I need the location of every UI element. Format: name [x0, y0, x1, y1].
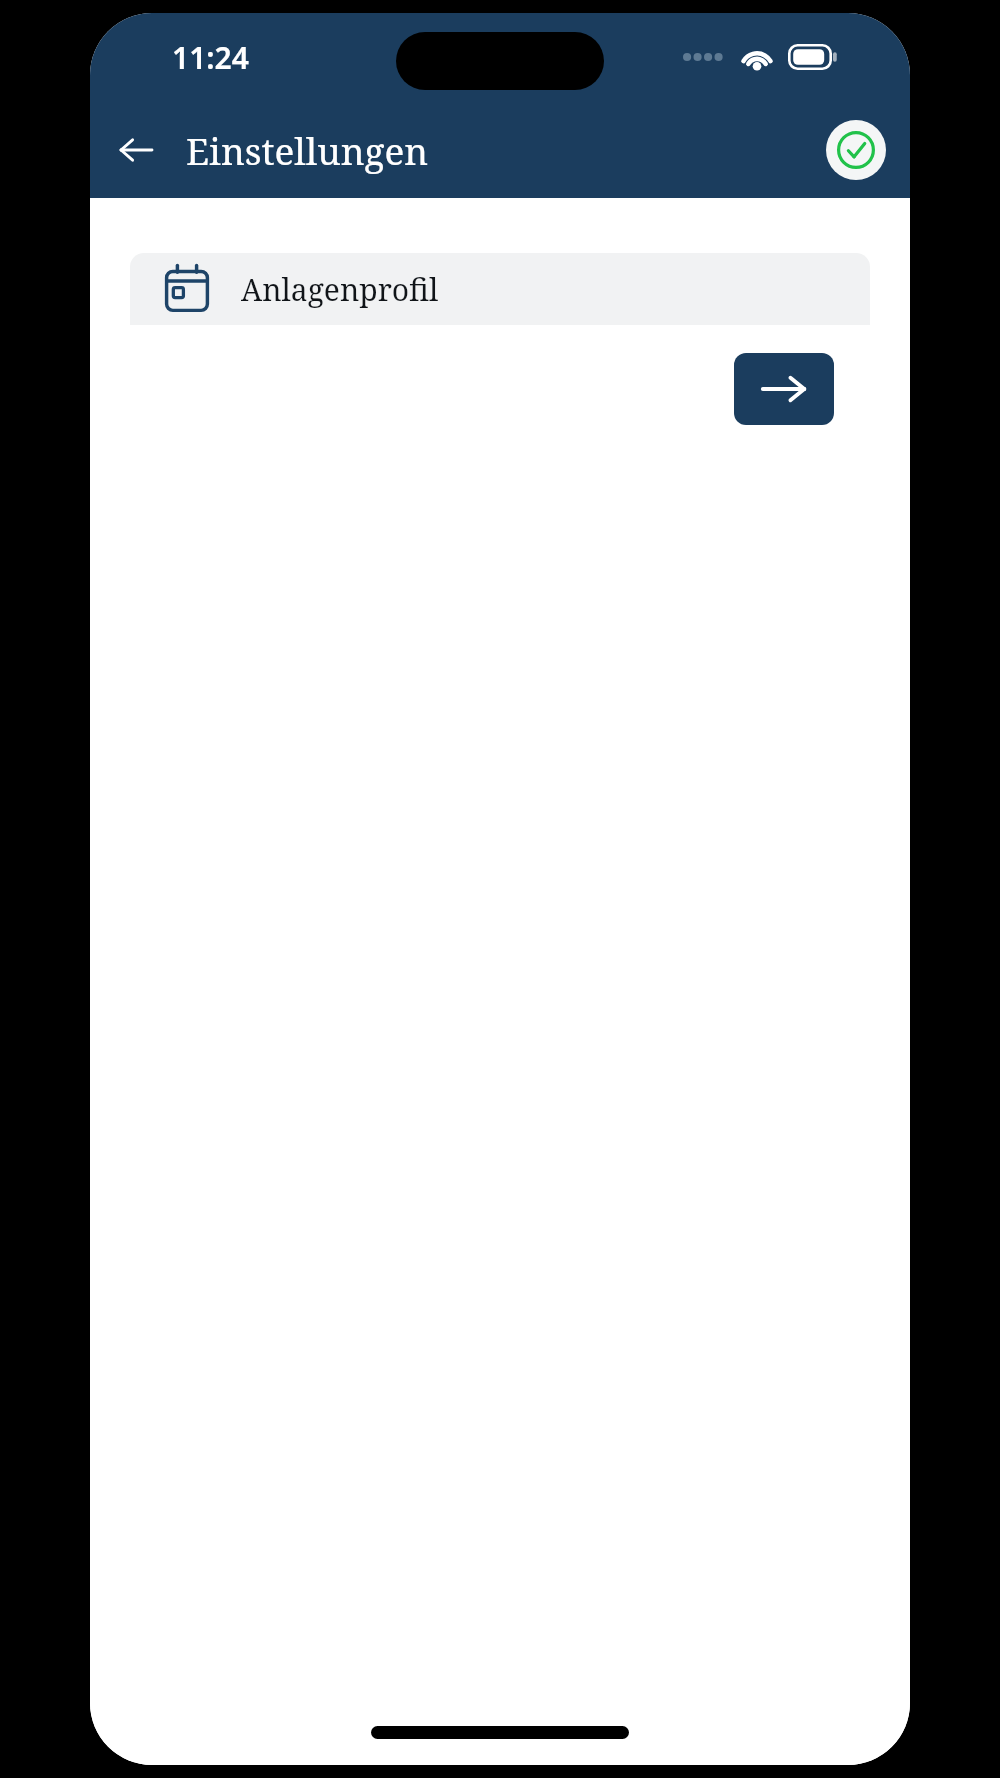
button[interactable]: Anlagenprofil — [130, 253, 870, 325]
staticText: Einstellungen — [186, 125, 429, 175]
button[interactable]: Zurück — [100, 114, 172, 186]
staticText: 11:24 — [172, 37, 249, 78]
button[interactable]: Bestätigen — [826, 120, 886, 180]
staticText: Anlagenprofil — [241, 269, 439, 310]
button[interactable]: Weiter — [734, 353, 834, 425]
